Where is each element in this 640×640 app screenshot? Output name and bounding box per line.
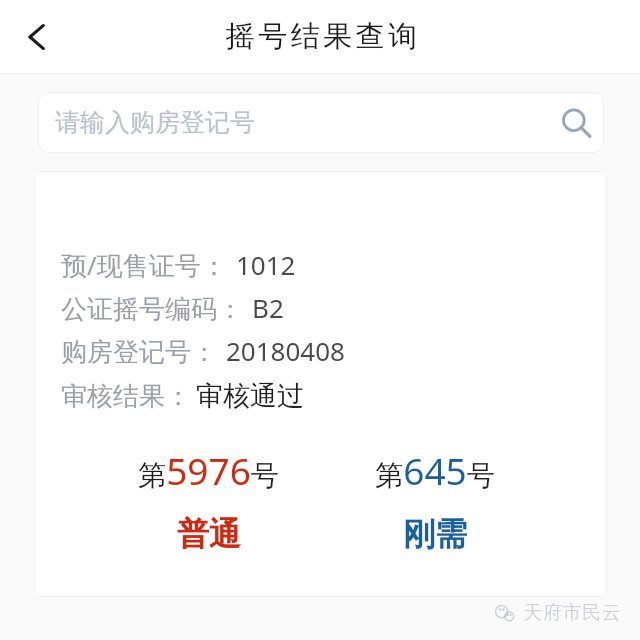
staticText: B2 bbox=[252, 290, 284, 325]
button[interactable]: Search bbox=[558, 105, 596, 143]
staticText: 审核通过 bbox=[196, 379, 304, 413]
button[interactable]: Back bbox=[8, 8, 66, 66]
staticText: 20180408 bbox=[226, 333, 345, 368]
button[interactable]: 请输入购房登记号 bbox=[38, 92, 604, 153]
staticText: 公证摇号编码： bbox=[61, 293, 243, 326]
staticText: 预/现售证号： bbox=[61, 247, 227, 283]
staticText: 1012 bbox=[236, 247, 296, 282]
staticText: 第645号 bbox=[375, 445, 495, 495]
staticText: 请输入购房登记号 bbox=[55, 107, 255, 138]
staticText: 天府市民云 bbox=[523, 601, 621, 625]
staticText: 普通 bbox=[177, 514, 241, 554]
staticText: 购房登记号： bbox=[61, 336, 217, 369]
staticText: 刚需 bbox=[403, 514, 467, 554]
staticText: 摇号结果查询 bbox=[224, 18, 419, 55]
staticText: 第5976号 bbox=[138, 445, 279, 495]
staticText: 审核结果： bbox=[61, 380, 191, 413]
